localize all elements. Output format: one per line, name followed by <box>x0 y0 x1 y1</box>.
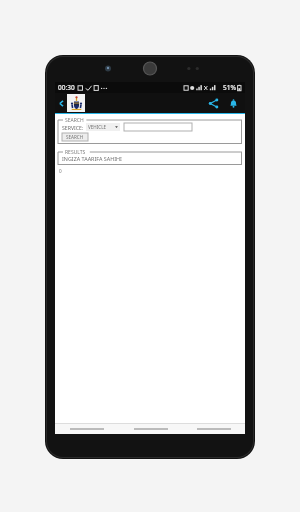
button[interactable]: VEHICLE <box>86 123 120 131</box>
staticText: 0 <box>59 168 62 174</box>
button[interactable]: Navigation item 1 <box>55 423 119 434</box>
button[interactable]: Share <box>203 93 223 113</box>
button[interactable]: Navigation item 2 <box>119 423 182 434</box>
button[interactable]: Notifications <box>223 93 243 113</box>
button[interactable]: Search input <box>124 123 192 131</box>
button[interactable]: App logo <box>67 94 85 112</box>
staticText: INGIZA TAARIFA SAHIHI <box>62 155 122 162</box>
button[interactable]: SEARCH <box>62 133 88 141</box>
staticText: 00:30 <box>58 83 75 92</box>
staticText: 51% <box>223 83 236 92</box>
button[interactable]: Navigation item 3 <box>182 423 245 434</box>
staticText: SERVICE: <box>62 124 84 131</box>
staticText: SEARCH <box>65 117 84 124</box>
button[interactable]: Back <box>55 93 67 113</box>
staticText: VEHICLE <box>88 124 107 130</box>
staticText: SEARCH <box>66 134 84 140</box>
staticText: RESULTS <box>65 149 86 156</box>
